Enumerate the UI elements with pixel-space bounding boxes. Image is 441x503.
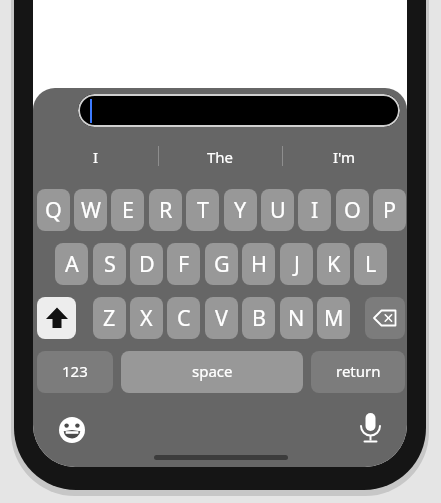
- button[interactable]: T: [186, 189, 219, 231]
- staticText: P: [383, 195, 397, 224]
- staticText: D: [139, 249, 155, 278]
- button[interactable]: H: [242, 243, 275, 285]
- button[interactable]: [37, 297, 76, 339]
- staticText: G: [214, 249, 230, 278]
- button[interactable]: Y: [224, 189, 257, 231]
- staticText: I: [311, 195, 319, 224]
- button[interactable]: P: [373, 189, 406, 231]
- button[interactable]: D: [130, 243, 163, 285]
- button[interactable]: X: [130, 297, 163, 339]
- staticText: E: [122, 195, 134, 224]
- button[interactable]: [78, 94, 400, 127]
- button[interactable]: N: [280, 297, 313, 339]
- button[interactable]: S: [93, 243, 126, 285]
- button[interactable]: R: [149, 189, 182, 231]
- staticText: space: [192, 361, 233, 381]
- button[interactable]: O: [336, 189, 369, 231]
- button[interactable]: F: [167, 243, 200, 285]
- staticText: F: [178, 249, 190, 278]
- staticText: S: [104, 249, 116, 278]
- staticText: V: [215, 303, 228, 332]
- button[interactable]: A: [55, 243, 88, 285]
- staticText: O: [344, 195, 361, 224]
- staticText: I'm: [333, 147, 356, 167]
- button[interactable]: I: [33, 146, 158, 168]
- button[interactable]: U: [261, 189, 294, 231]
- button[interactable]: M: [317, 297, 350, 339]
- button[interactable]: space: [121, 351, 303, 393]
- staticText: return: [336, 361, 381, 381]
- button[interactable]: C: [167, 297, 200, 339]
- button[interactable]: K: [317, 243, 350, 285]
- button[interactable]: [59, 417, 85, 443]
- button[interactable]: J: [280, 243, 313, 285]
- button[interactable]: I'm: [282, 146, 407, 168]
- staticText: W: [81, 195, 101, 224]
- button[interactable]: Q: [37, 189, 70, 231]
- button[interactable]: V: [205, 297, 238, 339]
- button[interactable]: [357, 411, 384, 444]
- staticText: The: [207, 147, 234, 167]
- button[interactable]: The: [158, 146, 283, 168]
- button[interactable]: return: [311, 351, 405, 393]
- staticText: N: [288, 303, 305, 332]
- staticText: R: [159, 195, 173, 224]
- button[interactable]: I: [298, 189, 331, 231]
- staticText: J: [294, 249, 300, 278]
- staticText: H: [251, 249, 267, 278]
- staticText: K: [327, 249, 341, 278]
- staticText: 123: [62, 361, 88, 381]
- staticText: L: [365, 249, 377, 278]
- button[interactable]: [365, 297, 405, 339]
- button[interactable]: G: [205, 243, 238, 285]
- staticText: X: [140, 303, 153, 332]
- staticText: T: [197, 195, 209, 224]
- button[interactable]: E: [111, 189, 144, 231]
- staticText: Z: [103, 303, 116, 332]
- staticText: C: [177, 303, 191, 332]
- button[interactable]: 123: [37, 351, 113, 393]
- staticText: B: [252, 303, 266, 332]
- staticText: U: [270, 195, 286, 224]
- staticText: A: [65, 249, 79, 278]
- staticText: M: [324, 303, 344, 332]
- staticText: I: [93, 147, 99, 167]
- button[interactable]: L: [354, 243, 387, 285]
- staticText: Y: [234, 195, 247, 224]
- button[interactable]: B: [242, 297, 275, 339]
- button[interactable]: Z: [93, 297, 126, 339]
- staticText: Q: [45, 195, 62, 224]
- button[interactable]: W: [74, 189, 107, 231]
